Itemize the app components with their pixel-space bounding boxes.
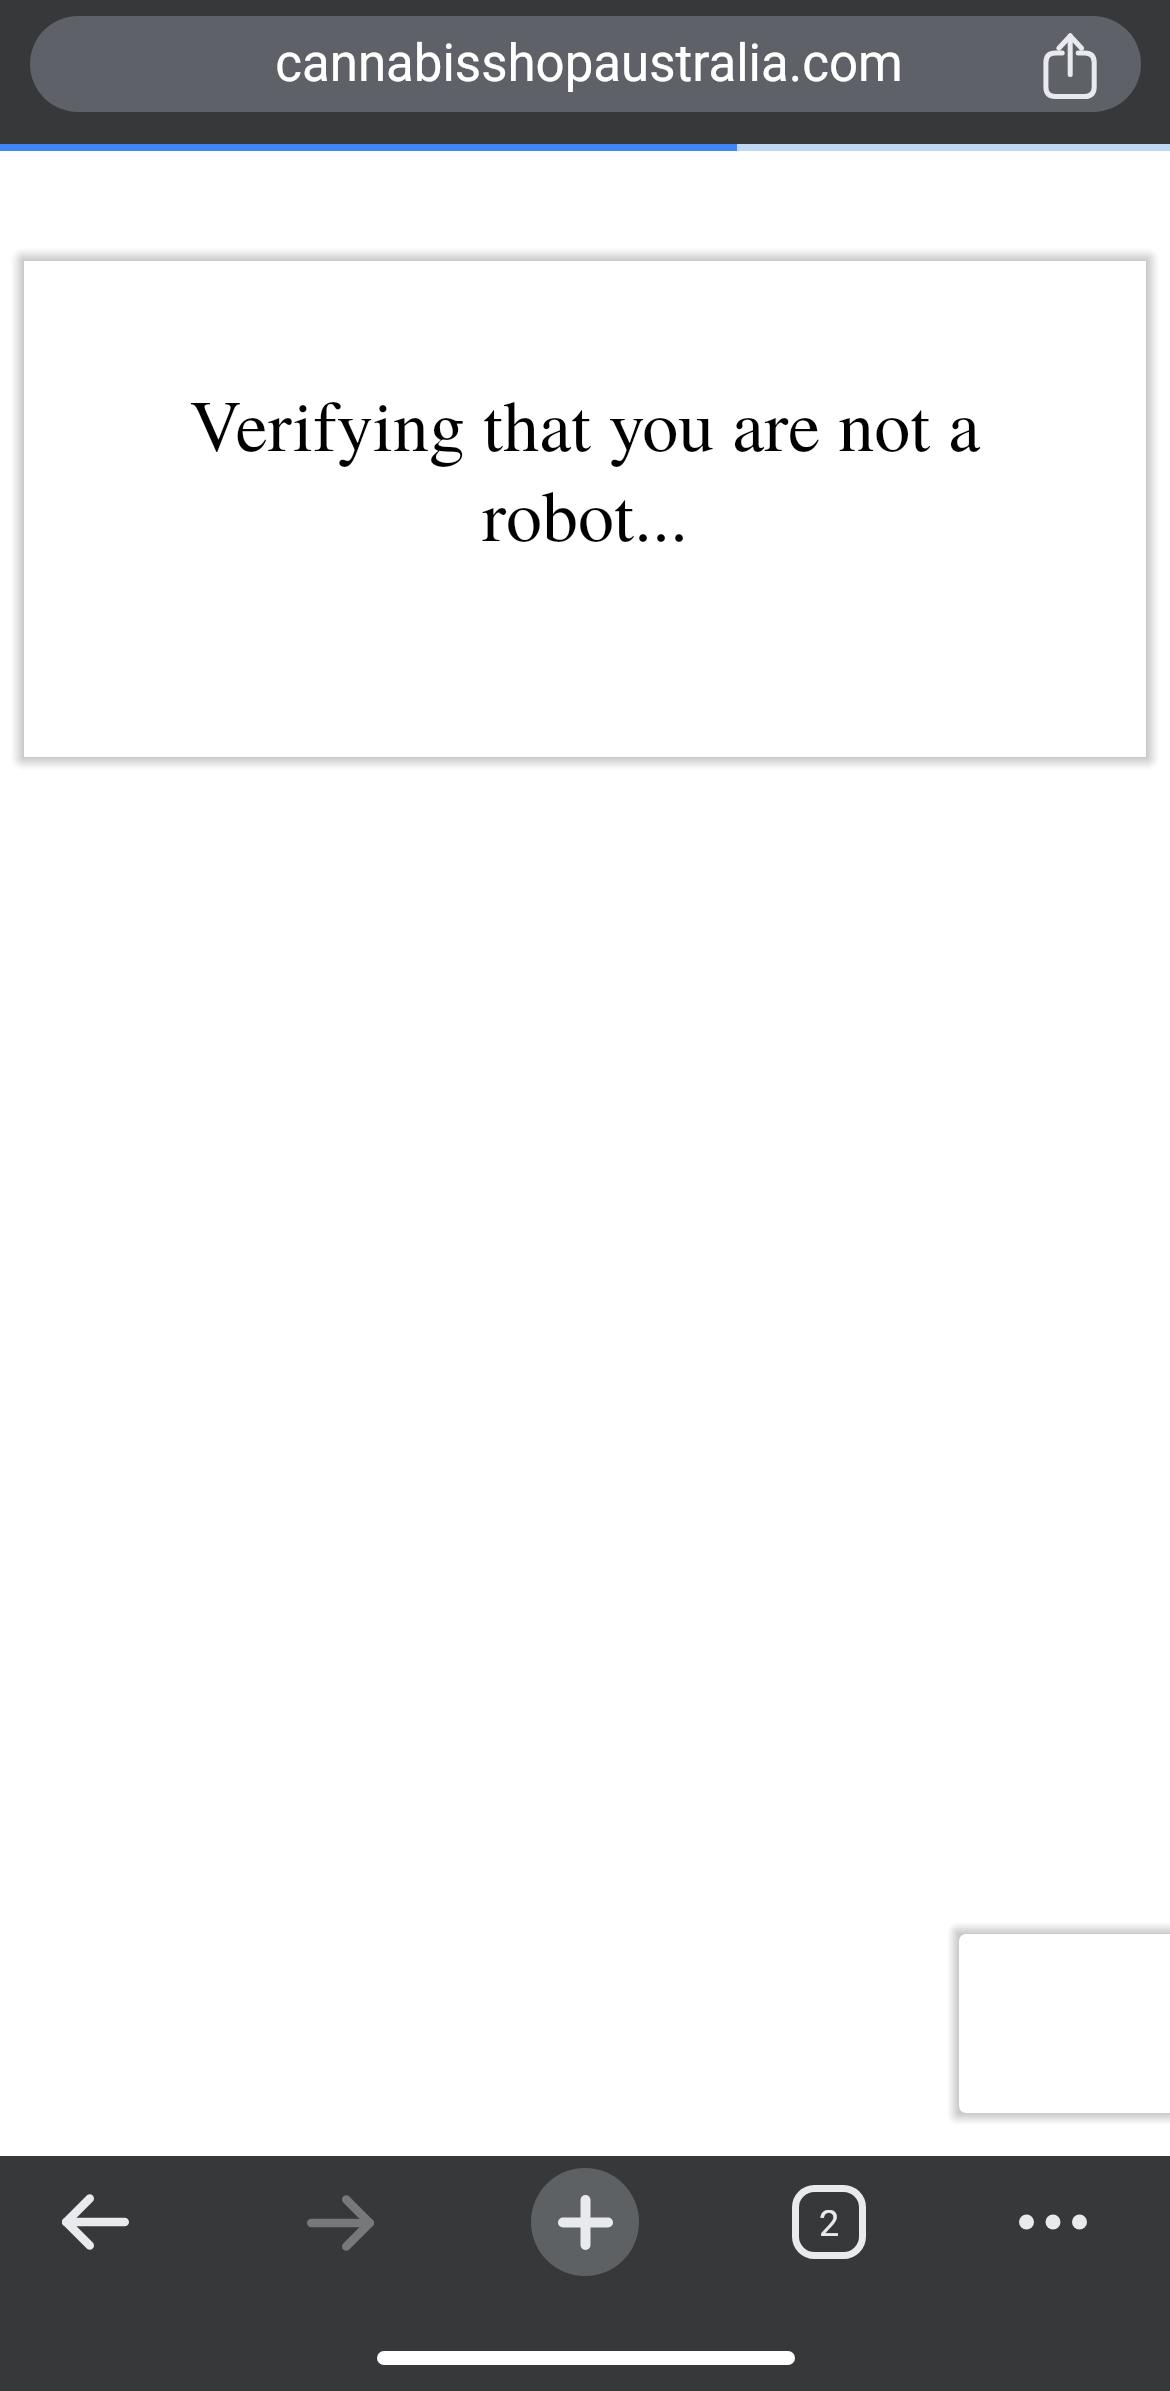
button[interactable]: Tabs	[754, 2147, 904, 2297]
button[interactable]: Forward	[265, 2148, 415, 2298]
staticText: 2	[819, 2203, 840, 2245]
button[interactable]: cannabisshopaustralia.com	[30, 16, 1141, 112]
staticText: cannabisshopaustralia.com	[275, 34, 903, 94]
button[interactable]: More options	[978, 2147, 1128, 2297]
button[interactable]: New tab	[510, 2147, 660, 2297]
button[interactable]: Share	[1015, 16, 1125, 112]
staticText: Verifying that you are not a robot...	[155, 375, 1015, 561]
button[interactable]: Back	[20, 2147, 170, 2297]
